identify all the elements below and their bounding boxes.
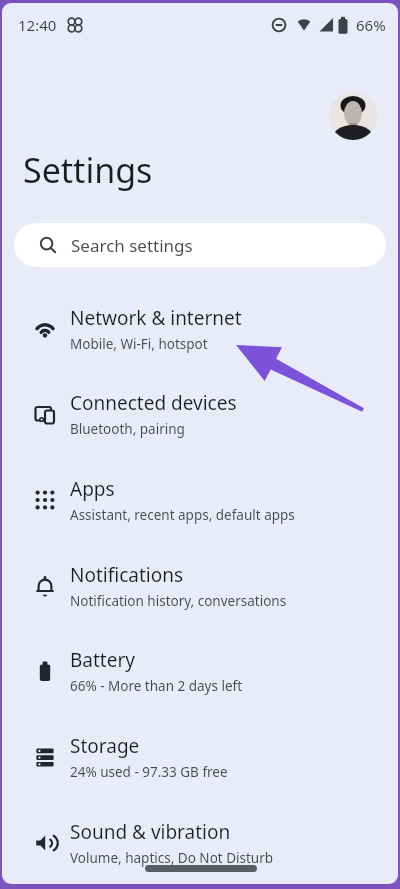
staticText: Storage xyxy=(70,733,140,759)
staticText: Search settings xyxy=(71,234,193,257)
staticText: Notification history, conversations xyxy=(70,592,287,610)
staticText: 66% - More than 2 days left xyxy=(70,677,243,695)
staticText: Assistant, recent apps, default apps xyxy=(70,506,295,524)
staticText: Apps xyxy=(70,476,115,502)
staticText: 66% xyxy=(356,15,386,35)
staticText: Battery xyxy=(70,647,135,673)
button[interactable]: Apps xyxy=(2,457,398,543)
staticText: Sound & vibration xyxy=(70,819,231,845)
staticText: 12:40 xyxy=(18,15,57,35)
staticText: Bluetooth, pairing xyxy=(70,420,185,438)
button[interactable] xyxy=(329,92,377,140)
staticText: 24% used - 97.33 GB free xyxy=(70,763,228,781)
staticText: Network & internet xyxy=(70,305,242,331)
button[interactable]: Search settings xyxy=(14,223,386,267)
staticText: Notifications xyxy=(70,562,184,588)
staticText: Connected devices xyxy=(70,390,237,416)
button[interactable]: Battery xyxy=(2,628,398,714)
button[interactable]: Storage xyxy=(2,714,398,800)
staticText: Settings xyxy=(23,147,153,193)
button[interactable]: Network & internet xyxy=(2,286,398,372)
button[interactable]: Connected devices xyxy=(2,371,398,457)
button[interactable]: Sound & vibration xyxy=(2,800,398,884)
staticText: Mobile, Wi-Fi, hotspot xyxy=(70,335,208,353)
button[interactable]: Notifications xyxy=(2,543,398,629)
staticText: Volume, haptics, Do Not Disturb xyxy=(70,849,274,867)
